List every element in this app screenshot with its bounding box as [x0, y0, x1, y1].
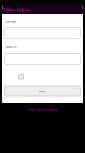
staticText: Forgot your password: [27, 107, 58, 111]
staticText: Username:: [4, 20, 16, 24]
staticText: Client Logon: [3, 7, 30, 12]
staticText: Submit: [39, 89, 46, 93]
button[interactable]: Forgot your password: [27, 107, 58, 111]
button[interactable]: Remember me: [18, 74, 23, 79]
staticText: Password:: [4, 45, 17, 49]
button[interactable]: Submit: [4, 86, 80, 96]
